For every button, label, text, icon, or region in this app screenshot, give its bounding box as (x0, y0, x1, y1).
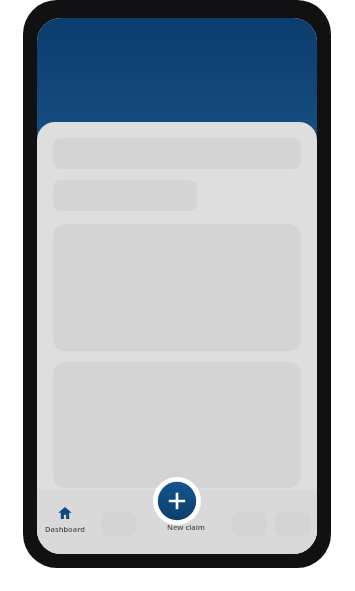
button[interactable]: New claim (158, 490, 214, 532)
button[interactable] (53, 362, 301, 488)
button[interactable]: Dashboard (37, 506, 93, 534)
button[interactable]: New claim (153, 477, 201, 525)
staticText: New claim (167, 522, 205, 532)
staticText: Dashboard (45, 524, 85, 534)
